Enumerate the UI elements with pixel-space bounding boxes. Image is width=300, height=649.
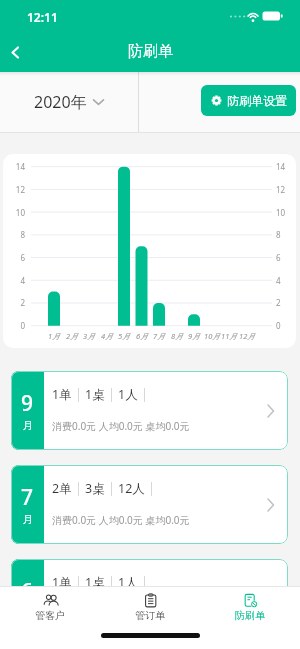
staticText: 10 bbox=[3, 207, 25, 218]
staticText: 防刷单设置 bbox=[227, 93, 287, 108]
button[interactable]: 6 bbox=[11, 559, 288, 638]
staticText: 8月 bbox=[171, 331, 183, 341]
staticText: 防刷单 bbox=[128, 42, 173, 61]
staticText: 6 bbox=[21, 577, 34, 606]
staticText: 1桌 bbox=[85, 386, 105, 403]
staticText: 月 bbox=[23, 513, 33, 526]
staticText: 消费0.0元 人均0.0元 桌均0.0元 bbox=[52, 607, 190, 621]
staticText: 2 bbox=[276, 297, 296, 308]
staticText: 4 bbox=[276, 275, 296, 286]
staticText: 12人 bbox=[118, 480, 145, 497]
staticText: 8 bbox=[276, 229, 296, 240]
staticText: 防刷单 bbox=[235, 609, 265, 622]
staticText: 12 bbox=[3, 184, 25, 195]
staticText: 1月 bbox=[48, 331, 60, 341]
button[interactable] bbox=[2, 36, 32, 66]
button[interactable]: 防刷单 bbox=[200, 586, 300, 649]
staticText: 管客户 bbox=[35, 609, 65, 622]
staticText: 2月 bbox=[66, 331, 78, 341]
staticText: 7月 bbox=[153, 331, 165, 341]
staticText: 14 bbox=[276, 161, 296, 172]
staticText: 6月 bbox=[136, 331, 148, 341]
staticText: 12月 bbox=[239, 331, 255, 341]
staticText: 4月 bbox=[101, 331, 113, 341]
staticText: 7 bbox=[21, 483, 34, 512]
staticText: 12:11 bbox=[27, 9, 58, 25]
staticText: 1人 bbox=[118, 574, 138, 591]
staticText: 9 bbox=[21, 389, 34, 418]
staticText: 10月 bbox=[204, 331, 220, 341]
staticText: 2单 bbox=[52, 480, 72, 497]
button[interactable]: 管订单 bbox=[100, 586, 200, 649]
staticText: 月 bbox=[23, 419, 33, 432]
staticText: 6 bbox=[276, 252, 296, 263]
staticText: 消费0.0元 人均0.0元 桌均0.0元 bbox=[52, 419, 190, 433]
button[interactable]: 7 bbox=[11, 465, 288, 544]
staticText: 3桌 bbox=[85, 480, 105, 497]
staticText: 10 bbox=[276, 207, 296, 218]
staticText: 0 bbox=[3, 320, 25, 331]
staticText: 5月 bbox=[118, 331, 130, 341]
staticText: 4 bbox=[3, 275, 25, 286]
staticText: 1单 bbox=[52, 574, 72, 591]
staticText: 消费0.0元 人均0.0元 桌均0.0元 bbox=[52, 513, 190, 527]
staticText: 管订单 bbox=[135, 609, 165, 622]
staticText: 1人 bbox=[118, 386, 138, 403]
staticText: 8 bbox=[3, 229, 25, 240]
staticText: 14 bbox=[3, 161, 25, 172]
button[interactable]: 管客户 bbox=[0, 586, 100, 649]
staticText: 2 bbox=[3, 297, 25, 308]
staticText: 0 bbox=[276, 320, 296, 331]
staticText: 3月 bbox=[83, 331, 95, 341]
staticText: 2020年 bbox=[34, 91, 87, 113]
button[interactable]: 防刷单设置 bbox=[201, 85, 296, 116]
button[interactable]: 2020年 bbox=[0, 72, 138, 132]
staticText: 6 bbox=[3, 252, 25, 263]
button[interactable]: 9 bbox=[11, 371, 288, 450]
staticText: 11月 bbox=[221, 331, 237, 341]
staticText: 9月 bbox=[188, 331, 200, 341]
staticText: 1单 bbox=[52, 386, 72, 403]
staticText: 1桌 bbox=[85, 574, 105, 591]
staticText: 12 bbox=[276, 184, 296, 195]
